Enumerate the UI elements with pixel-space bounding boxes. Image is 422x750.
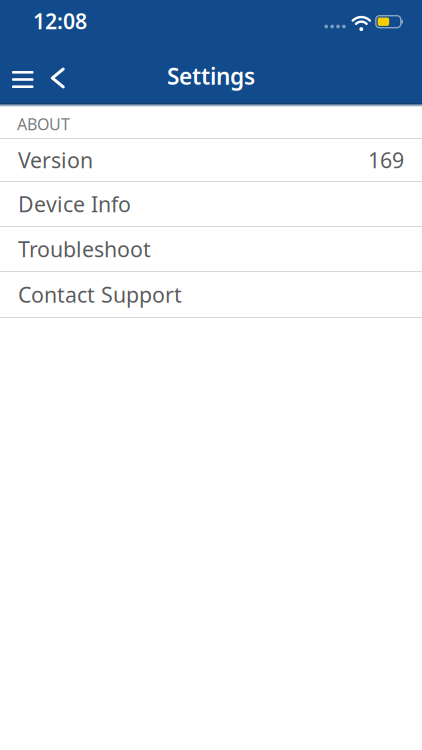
button[interactable]: Troubleshoot — [0, 227, 422, 272]
staticText: 12:08 — [33, 7, 87, 35]
staticText: Device Info — [18, 190, 131, 218]
button[interactable]: Version — [0, 139, 422, 182]
button[interactable]: Contact Support — [0, 272, 422, 318]
button[interactable]: Device Info — [0, 182, 422, 227]
staticText: Troubleshoot — [18, 235, 151, 263]
staticText: ABOUT — [17, 113, 70, 135]
button[interactable]: Back — [33, 66, 65, 87]
staticText: Settings — [167, 61, 255, 91]
staticText: 169 — [368, 146, 404, 174]
staticText: Contact Support — [18, 280, 182, 309]
staticText: Version — [18, 146, 93, 174]
button[interactable]: Menu — [0, 68, 33, 85]
